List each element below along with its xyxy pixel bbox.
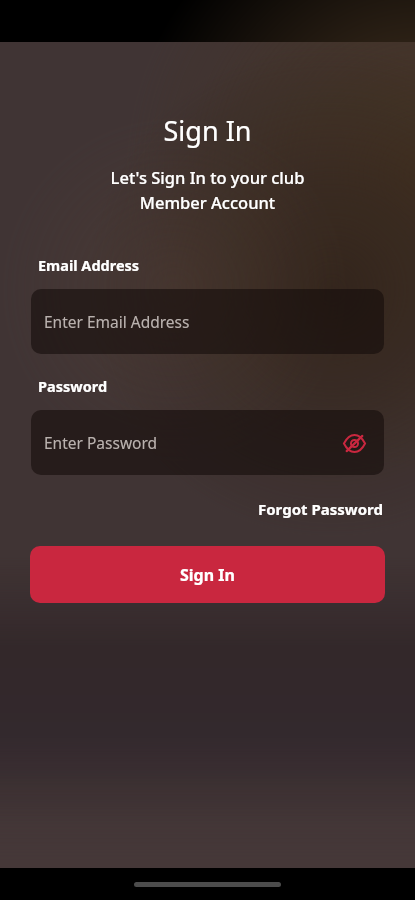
button[interactable]: Sign In [30,546,385,603]
button[interactable]: Show password [337,426,371,460]
button[interactable]: Enter Password [31,410,384,475]
staticText: Enter Password [44,432,158,453]
button[interactable]: Enter Email Address [31,289,384,354]
staticText: Forgot Password [258,499,383,519]
staticText: Sign In [180,564,235,586]
staticText: Sign In [0,112,415,149]
staticText: Password [38,376,108,396]
staticText: Email Address [38,255,140,275]
staticText: Let's Sign In to your club Member Accoun… [36,166,379,214]
staticText: Enter Email Address [44,311,190,332]
button[interactable]: Forgot Password [256,496,385,522]
